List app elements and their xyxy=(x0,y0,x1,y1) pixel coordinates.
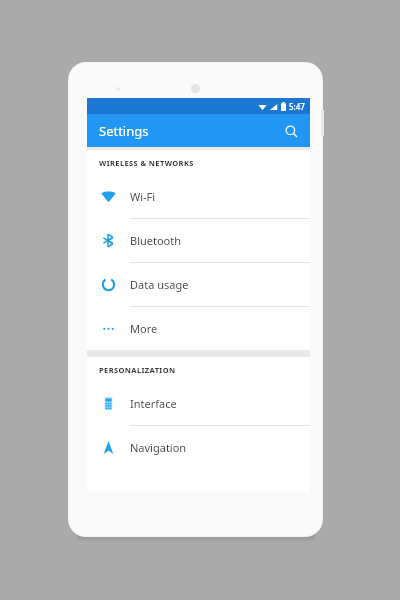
button[interactable]: Wi-Fi xyxy=(87,175,310,218)
button[interactable]: Search xyxy=(278,118,304,144)
staticText: WIRELESS & NETWORKS xyxy=(99,158,194,168)
button[interactable]: Data usage xyxy=(87,263,310,306)
staticText: PERSONALIZATION xyxy=(99,365,176,375)
button[interactable]: Bluetooth xyxy=(87,219,310,262)
staticText: Navigation xyxy=(130,440,187,455)
button[interactable]: Navigation xyxy=(87,426,310,469)
button[interactable]: Interface xyxy=(87,382,310,425)
staticText: More xyxy=(130,321,158,336)
staticText: 5:47 xyxy=(289,101,305,112)
staticText: Interface xyxy=(130,396,177,411)
staticText: Bluetooth xyxy=(130,233,182,248)
staticText: Settings xyxy=(99,122,149,140)
button[interactable]: More xyxy=(87,307,310,350)
staticText: Wi-Fi xyxy=(130,189,156,204)
staticText: Data usage xyxy=(130,277,189,292)
